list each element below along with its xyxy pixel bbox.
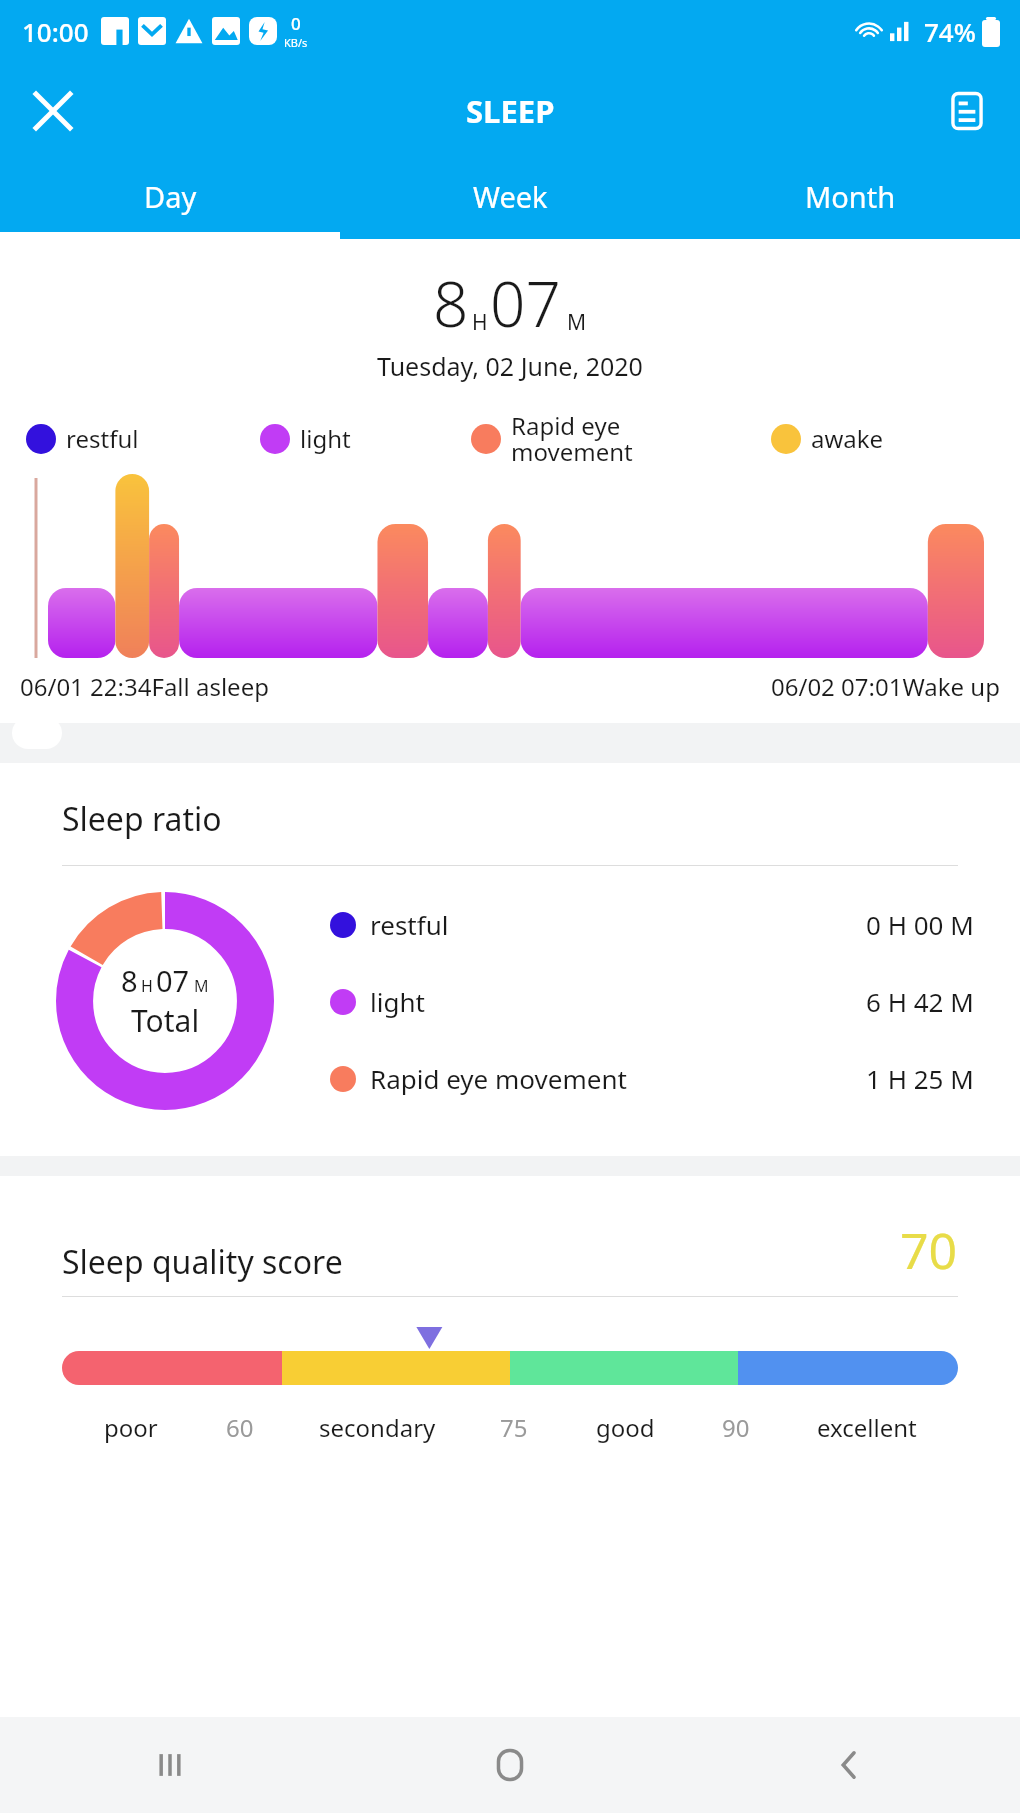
button[interactable]: Rapid eye movement [330,1061,974,1096]
staticText: 07 [156,961,190,1000]
staticText: good [596,1411,655,1444]
staticText: restful [66,422,139,455]
button[interactable]: Scrub timeline [12,717,62,749]
staticText: 6 H 42 M [866,984,974,1019]
staticText: M [567,308,587,337]
button[interactable]: Month [680,160,1020,232]
staticText: 74% [924,14,976,49]
button[interactable]: Back [680,1717,1020,1813]
button[interactable]: restful [330,907,974,942]
staticText: 0 [291,12,301,35]
staticText: Month [805,177,896,216]
staticText: 1 H 25 M [866,1061,974,1096]
staticText: 10:00 [22,14,89,49]
staticText: Rapid eye movement [511,409,633,468]
staticText: 75 [500,1411,528,1444]
staticText: 06/02 07:01Wake up [771,670,1000,703]
button[interactable]: Sleep records [940,84,994,138]
staticText: light [300,422,351,455]
staticText: M [194,975,209,997]
staticText: Tuesday, 02 June, 2020 [377,349,643,383]
staticText: Day [144,177,197,216]
staticText: 8 [433,261,469,345]
staticText: 07 [490,261,561,345]
staticText: H [472,308,488,337]
staticText: secondary [319,1411,436,1444]
button[interactable]: Recent apps [0,1717,340,1813]
staticText: poor [104,1411,158,1444]
staticText: SLEEP [466,90,555,132]
staticText: Total [131,1000,200,1041]
staticText: 90 [722,1411,750,1444]
staticText: Sleep ratio [62,797,222,841]
button[interactable]: Close [26,84,80,138]
staticText: Week [473,177,548,216]
staticText: 8 [121,961,138,1000]
button[interactable]: Week [340,160,680,232]
staticText: Sleep quality score [62,1240,900,1284]
staticText: awake [811,422,884,455]
staticText: excellent [817,1411,917,1444]
staticText: KB/s [284,35,308,50]
staticText: Rapid eye movement [370,1061,866,1096]
staticText: 0 H 00 M [866,907,974,942]
button[interactable]: Home [340,1717,680,1813]
staticText: 70 [900,1216,958,1284]
staticText: 06/01 22:34Fall asleep [20,670,269,703]
staticText: restful [370,907,866,942]
staticText: light [370,984,866,1019]
button[interactable]: light [330,984,974,1019]
staticText: 60 [226,1411,254,1444]
button[interactable]: Day [0,160,340,232]
staticText: H [141,975,153,997]
